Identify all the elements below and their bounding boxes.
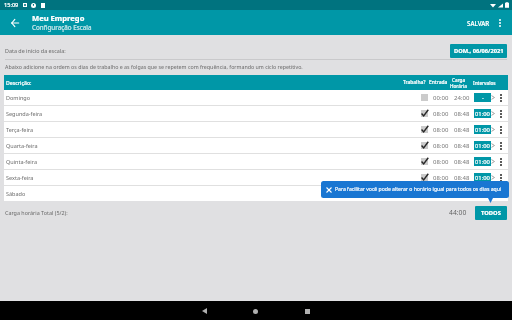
staticText: 00:00 xyxy=(433,94,449,102)
staticText: 08:00 xyxy=(433,110,449,118)
staticText: 08:48 xyxy=(454,126,470,134)
staticText: Intervalos xyxy=(473,80,496,86)
button[interactable]: 01:00 xyxy=(474,141,491,150)
staticText: Horária xyxy=(450,83,467,89)
staticText: 08:00 xyxy=(433,158,449,166)
staticText: 08:48 xyxy=(454,110,470,118)
staticText: 24:00 xyxy=(454,94,470,102)
staticText: Carga horária Total (5/2): xyxy=(5,209,68,216)
staticText: Domingo xyxy=(6,94,31,101)
button[interactable]: 01:00 xyxy=(474,125,491,134)
staticText: 08:48 xyxy=(454,158,470,166)
staticText: Terça-feira xyxy=(6,126,34,133)
staticText: Quinta-feira xyxy=(6,158,38,165)
button[interactable]: - xyxy=(474,189,491,198)
staticText: Abaixo adicione na ordem os dias de trab… xyxy=(5,63,303,70)
button[interactable]: TODOS xyxy=(475,206,507,220)
staticText: 01:00 xyxy=(475,142,490,150)
staticText: Sábado xyxy=(6,190,26,197)
button[interactable]: Quinta-feira xyxy=(4,154,508,169)
button[interactable]: Row options xyxy=(496,157,506,167)
button[interactable]: Recents xyxy=(301,305,313,317)
staticText: 08:00 xyxy=(433,142,449,150)
button[interactable]: Sexta-feira xyxy=(4,170,508,185)
staticText: Entrada xyxy=(429,79,448,86)
button[interactable]: Row options xyxy=(496,125,506,135)
staticText: Quarta-feira xyxy=(6,142,38,149)
staticText: 01:00 xyxy=(475,174,490,182)
staticText: 00:00 xyxy=(433,190,449,198)
staticText: 24:00 xyxy=(454,190,470,198)
staticText: Segunda-feira xyxy=(6,110,43,117)
button[interactable]: 01:00 xyxy=(474,109,491,118)
button[interactable]: - xyxy=(474,93,491,102)
staticText: DOM., 06/06/2021 xyxy=(454,47,504,55)
button[interactable]: 01:00 xyxy=(474,157,491,166)
staticText: 15:09 xyxy=(4,1,19,9)
staticText: 08:00 xyxy=(433,174,449,182)
button[interactable]: SALVAR xyxy=(463,14,494,32)
staticText: TODOS xyxy=(481,209,501,217)
staticText: 01:00 xyxy=(475,126,490,134)
staticText: - xyxy=(482,190,484,198)
staticText: Trabalha? xyxy=(403,79,426,86)
staticText: Sexta-feira xyxy=(6,174,34,181)
staticText: Para facilitar você pode alterar o horár… xyxy=(335,186,502,193)
staticText: 44:00 xyxy=(449,208,467,217)
button[interactable]: Sábado xyxy=(4,186,508,201)
button[interactable]: 01:00 xyxy=(474,173,491,182)
button[interactable]: Row options xyxy=(496,141,506,151)
button[interactable]: Quarta-feira xyxy=(4,138,508,153)
staticText: 08:00 xyxy=(433,126,449,134)
button[interactable]: Close xyxy=(325,186,332,193)
staticText: Descrição: xyxy=(6,79,32,86)
staticText: Data de início da escala: xyxy=(5,47,66,54)
button[interactable]: Row options xyxy=(496,189,506,199)
staticText: 08:48 xyxy=(454,142,470,150)
button[interactable]: Row options xyxy=(496,173,506,183)
staticText: - xyxy=(482,94,484,102)
button[interactable]: Back xyxy=(198,305,210,317)
staticText: 08:48 xyxy=(454,174,470,182)
staticText: 01:00 xyxy=(475,158,490,166)
button[interactable]: Segunda-feira xyxy=(4,106,508,121)
button[interactable]: More options xyxy=(495,18,505,28)
button[interactable]: Row options xyxy=(496,93,506,103)
staticText: Meu Emprego xyxy=(32,13,85,23)
staticText: SALVAR xyxy=(467,19,490,27)
staticText: Configuração Escala xyxy=(32,23,92,32)
staticText: 01:00 xyxy=(475,110,490,118)
button[interactable]: Domingo xyxy=(4,90,508,105)
button[interactable]: Terça-feira xyxy=(4,122,508,137)
button[interactable]: Row options xyxy=(496,109,506,119)
staticText: Carga xyxy=(452,77,466,83)
button[interactable]: Home xyxy=(249,305,261,317)
button[interactable]: Back xyxy=(5,13,24,32)
button[interactable]: DOM., 06/06/2021 xyxy=(450,44,507,58)
button[interactable]: Close xyxy=(321,181,509,198)
